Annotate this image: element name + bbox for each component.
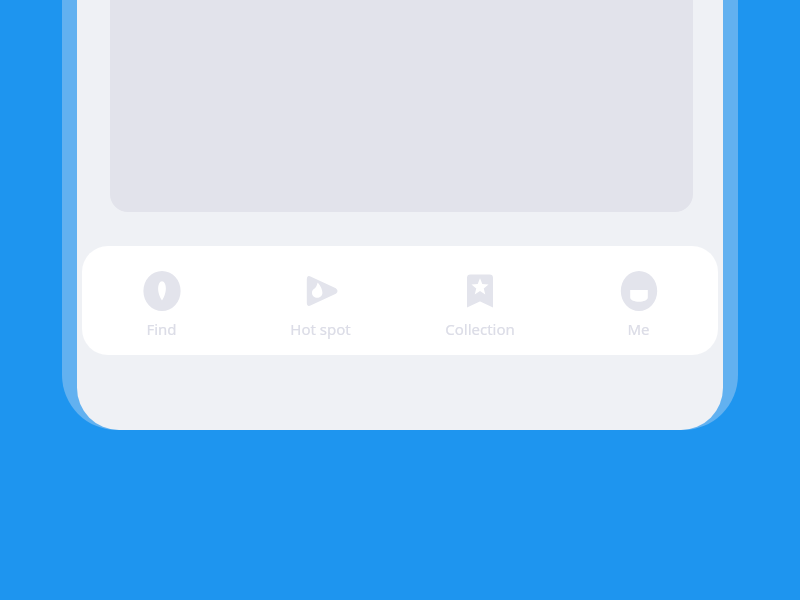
other: Hot spot <box>301 271 341 311</box>
other: Collection <box>460 271 500 311</box>
other: Me <box>619 271 659 311</box>
other: Find <box>142 271 182 311</box>
staticText: Collection <box>445 319 515 339</box>
staticText: Me <box>627 319 650 339</box>
button[interactable]: Hot spot <box>241 246 400 355</box>
button[interactable]: Me <box>559 246 718 355</box>
staticText: Find <box>146 319 177 339</box>
button[interactable]: Collection <box>400 246 559 355</box>
staticText: Hot spot <box>290 319 351 339</box>
button[interactable]: Find <box>82 246 241 355</box>
